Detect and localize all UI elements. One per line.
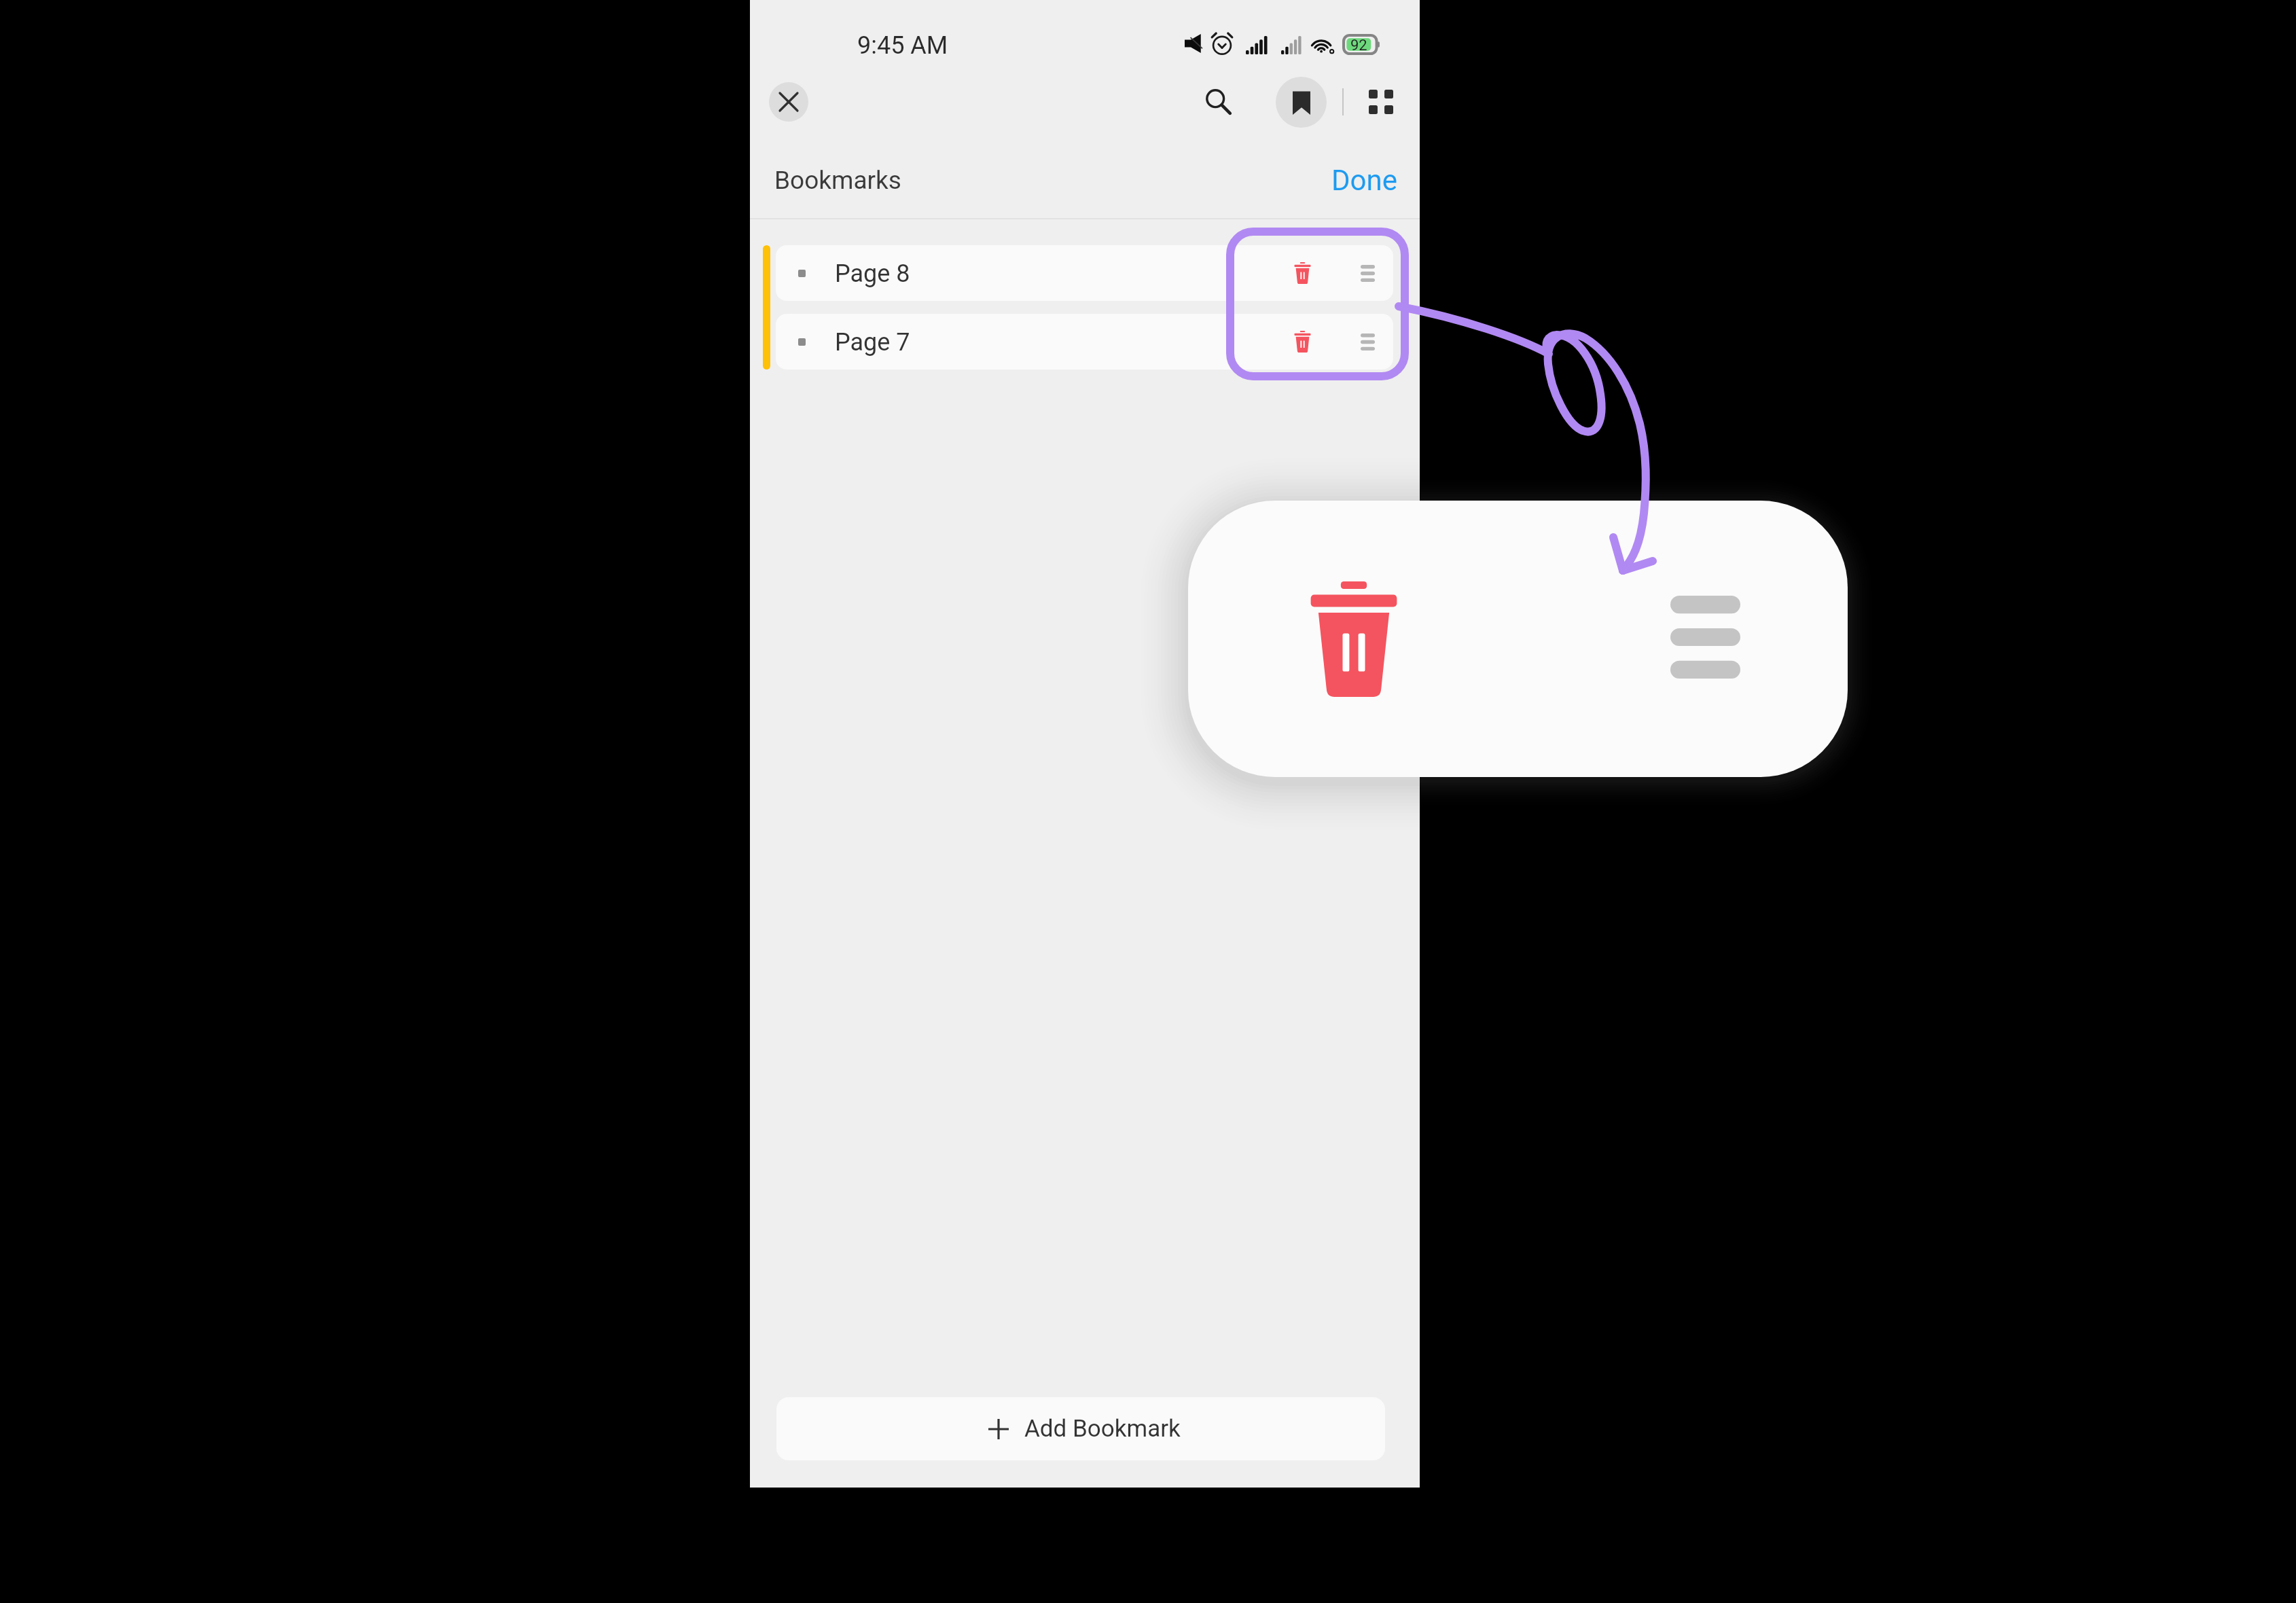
button[interactable]: Grid view [1357, 77, 1405, 126]
staticText: Add Bookmark [1024, 1415, 1181, 1443]
button[interactable]: Delete bookmark [1276, 314, 1328, 370]
staticText: Done [1331, 164, 1397, 197]
staticText: Bookmarks [774, 166, 901, 195]
staticText: Page 7 [835, 328, 910, 357]
button[interactable]: Reorder bookmark [1342, 245, 1393, 301]
button[interactable]: Page 7 [776, 314, 1393, 370]
button[interactable]: Page 8 [776, 245, 1393, 301]
button[interactable]: Done [1331, 164, 1397, 197]
button[interactable]: Reorder bookmark [1342, 314, 1393, 370]
staticText: Page 8 [835, 259, 910, 288]
button[interactable]: Search [1194, 77, 1243, 126]
button[interactable]: Close [769, 82, 808, 122]
button[interactable]: Bookmarks [1276, 77, 1327, 128]
button[interactable]: Add Bookmark [776, 1397, 1385, 1460]
button[interactable]: Delete bookmark [1276, 245, 1328, 301]
staticText: 92 [1350, 37, 1367, 54]
staticText: 9:45 AM [857, 31, 948, 60]
